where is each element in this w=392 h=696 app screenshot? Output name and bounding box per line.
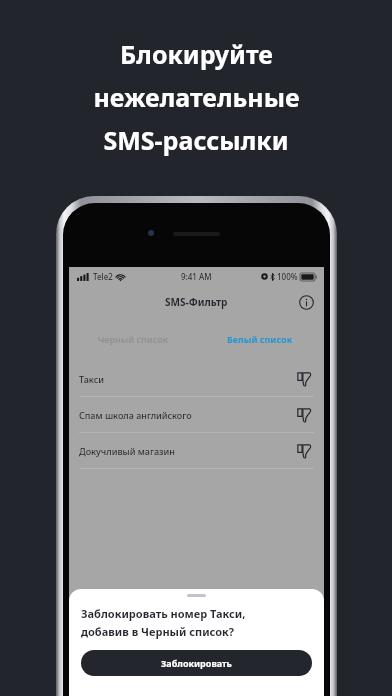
button[interactable]: Информация [295,291,317,313]
staticText: SMS-Фильтр [165,295,228,309]
button[interactable]: Такси [69,361,324,396]
staticText: Заблокировать номер Такси, [81,606,246,621]
staticText: Блокируйте [120,37,273,71]
staticText: Черный список [98,333,168,345]
staticText: Tele2 [93,271,113,282]
staticText: Спам школа английского [79,409,294,421]
button[interactable]: Заблокировать Спам школа английского [294,405,314,425]
button[interactable]: Спам школа английского [69,397,324,432]
button[interactable]: Заблокировать [81,650,312,676]
staticText: Докучливый магазин [79,445,294,457]
button[interactable]: Заблокировать Такси [294,369,314,389]
staticText: нежелательные [93,80,300,114]
button[interactable]: Белый список [196,317,324,361]
staticText: 100% [277,271,298,282]
staticText: SMS-рассылки [103,123,289,157]
button[interactable]: Докучливый магазин [69,433,324,468]
staticText: Заблокировать [161,657,232,669]
staticText: добавив в Черный список? [81,624,235,639]
button[interactable]: Заблокировать Докучливый магазин [294,441,314,461]
staticText: 9:41 AM [181,271,212,282]
staticText: Такси [79,373,294,385]
staticText: Белый список [227,333,293,345]
button[interactable]: Черный список [69,317,196,361]
